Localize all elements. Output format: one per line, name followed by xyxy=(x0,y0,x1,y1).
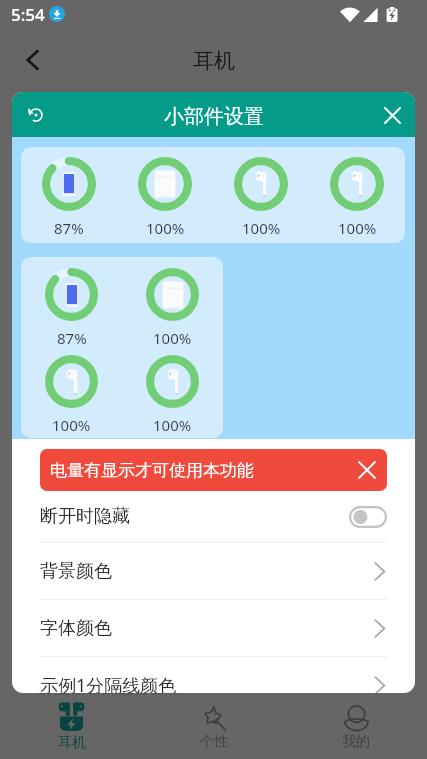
staticText: 87% xyxy=(54,218,84,238)
button[interactable]: Close xyxy=(378,101,406,129)
staticText: 小部件设置 xyxy=(164,104,264,129)
button[interactable]: 我的 xyxy=(285,695,427,759)
staticText: 100% xyxy=(338,218,377,238)
button[interactable]: 背景颜色 xyxy=(40,543,387,599)
staticText: 背景颜色 xyxy=(40,560,112,583)
button[interactable]: 耳机 xyxy=(0,695,143,759)
staticText: 电量有显示才可使用本功能 xyxy=(50,460,254,481)
button[interactable]: Back xyxy=(18,45,48,75)
staticText: 5:54 xyxy=(11,3,45,26)
button[interactable]: 个性 xyxy=(143,695,285,759)
staticText: 个性 xyxy=(200,733,228,751)
staticText: 示例1分隔线颜色 xyxy=(40,673,177,693)
staticText: 100% xyxy=(146,218,185,238)
button[interactable]: 字体颜色 xyxy=(40,600,387,656)
other: Dismiss xyxy=(359,462,375,478)
staticText: 数字显示的播放音乐 xyxy=(38,683,182,695)
staticText: 100% xyxy=(153,415,192,432)
staticText: 100% xyxy=(52,415,91,432)
staticText: 100% xyxy=(153,328,192,345)
button[interactable]: 示例1分隔线颜色 xyxy=(40,657,387,693)
staticText: 100% xyxy=(242,218,281,238)
button[interactable]: Reset xyxy=(22,101,50,129)
staticText: 断开时隐藏 xyxy=(40,505,130,528)
button[interactable]: 断开时隐藏 xyxy=(40,491,387,542)
button[interactable]: 电量有显示才可使用本功能 xyxy=(40,449,387,491)
staticText: 耳机 xyxy=(58,734,86,752)
staticText: 87% xyxy=(57,328,87,345)
staticText: 我的 xyxy=(342,733,370,751)
staticText: 耳机 xyxy=(193,48,235,74)
staticText: 字体颜色 xyxy=(40,617,112,640)
